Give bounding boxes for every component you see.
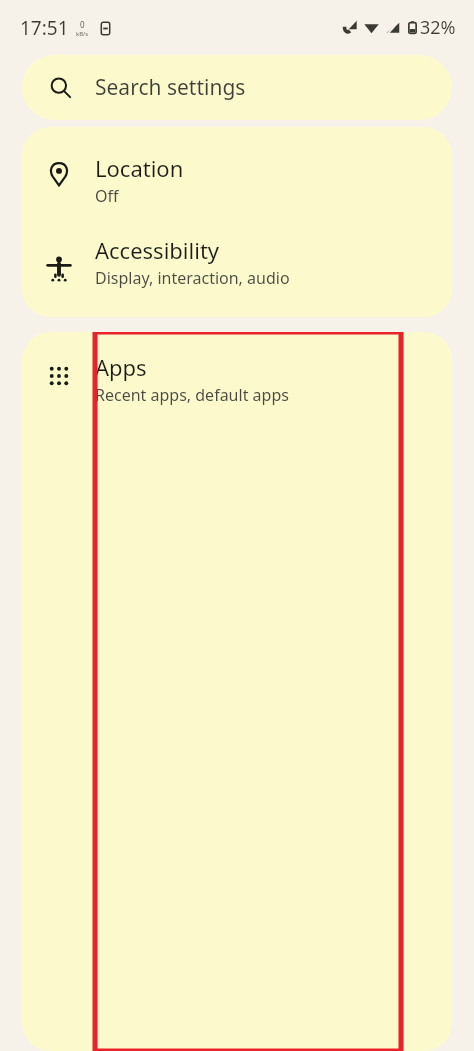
staticText: kB/s [76, 30, 89, 38]
staticText: 0 [80, 19, 85, 30]
button[interactable]: Accessibility [22, 221, 452, 317]
button[interactable]: Apps [22, 332, 452, 1051]
button[interactable]: Search settings [22, 55, 452, 120]
staticText: Apps [95, 352, 147, 382]
staticText: Accessibility [95, 235, 220, 265]
staticText: Recent apps, default apps [95, 384, 289, 406]
staticText: Display, interaction, audio [95, 267, 290, 289]
staticText: Off [95, 185, 119, 207]
button[interactable]: Location [22, 127, 452, 221]
staticText: 32% [420, 15, 456, 40]
staticText: Search settings [95, 73, 246, 102]
staticText: 17:51 [20, 15, 69, 41]
staticText: Location [95, 153, 184, 183]
